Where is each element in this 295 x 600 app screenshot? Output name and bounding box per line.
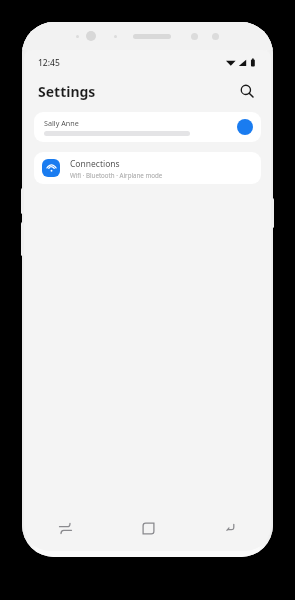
button[interactable]: Search bbox=[237, 81, 257, 101]
button[interactable]: Connections bbox=[34, 152, 261, 184]
staticText: Sally Anne bbox=[44, 118, 79, 128]
button[interactable]: Recents bbox=[24, 505, 107, 551]
button[interactable]: Sally Anne bbox=[34, 112, 261, 142]
button[interactable]: Home bbox=[107, 505, 189, 551]
staticText: Connections bbox=[70, 158, 120, 170]
button[interactable]: Back bbox=[189, 505, 271, 551]
staticText: 12:45 bbox=[38, 57, 60, 69]
staticText: Wifi · Bluetooth · Airplane mode bbox=[70, 171, 163, 179]
staticText: Settings bbox=[38, 82, 96, 101]
